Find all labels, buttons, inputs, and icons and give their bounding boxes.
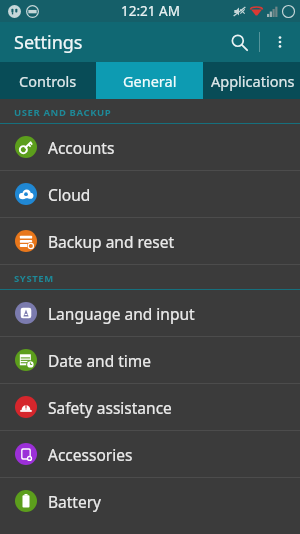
staticText: 12:21 AM — [121, 2, 180, 20]
button[interactable]: More options — [260, 22, 300, 62]
staticText: SYSTEM — [14, 272, 54, 285]
button[interactable]: Cloud — [0, 171, 300, 217]
staticText: General — [123, 71, 177, 91]
staticText: Cloud — [48, 184, 91, 205]
button[interactable]: Applications — [203, 62, 300, 99]
staticText: Settings — [14, 30, 83, 55]
staticText: Backup and reset — [48, 231, 175, 252]
button[interactable]: Battery — [0, 478, 300, 524]
button[interactable]: General — [96, 62, 203, 99]
staticText: Accessories — [48, 444, 133, 465]
staticText: Safety assistance — [48, 397, 172, 418]
staticText: Accounts — [48, 137, 115, 158]
button[interactable]: Date and time — [0, 337, 300, 383]
staticText: Language and input — [48, 303, 195, 324]
button[interactable]: Accounts — [0, 124, 300, 170]
staticText: Controls — [19, 71, 77, 91]
staticText: Applications — [211, 71, 295, 91]
button[interactable]: Safety assistance — [0, 384, 300, 430]
button[interactable]: Language and input — [0, 290, 300, 336]
button[interactable]: Search — [219, 22, 259, 62]
staticText: USER AND BACKUP — [14, 106, 112, 119]
button[interactable]: Accessories — [0, 431, 300, 477]
button[interactable]: Controls — [0, 62, 96, 99]
button[interactable]: Backup and reset — [0, 218, 300, 264]
staticText: Date and time — [48, 350, 152, 371]
staticText: Battery — [48, 491, 102, 512]
